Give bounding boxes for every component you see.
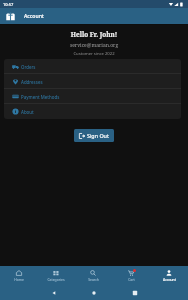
staticText: Addresses [21,79,43,85]
button[interactable]: Sign Out [74,129,114,142]
button[interactable]: Cart [112,266,150,285]
staticText: Sign Out [87,132,109,139]
button[interactable]: Addresses [4,74,181,89]
button[interactable]: Home [0,266,37,285]
staticText: Home [14,277,24,282]
staticText: Cart [128,277,135,282]
button[interactable]: Categories [37,266,74,285]
button[interactable]: App logo [6,12,15,21]
button[interactable]: Payment Methods [4,89,181,104]
staticText: Search [88,277,99,282]
staticText: service@marian.org [0,42,188,49]
button[interactable]: Orders [4,59,181,74]
staticText: Categories [47,277,65,282]
button[interactable]: About [4,104,181,119]
button[interactable]: Search [74,266,112,285]
staticText: Account [24,13,44,20]
button[interactable]: Recent apps [125,285,145,300]
staticText: 10:57 [3,2,14,7]
staticText: Orders [21,64,36,70]
button[interactable]: Account [150,266,188,285]
staticText: Payment Methods [21,94,60,100]
staticText: About [21,109,34,115]
staticText: Customer since 2022 [0,51,188,57]
staticText: Hello Fr. John! [0,30,188,39]
staticText: Account [163,277,176,282]
button[interactable]: Back [44,285,64,300]
button[interactable]: Home [84,285,104,300]
